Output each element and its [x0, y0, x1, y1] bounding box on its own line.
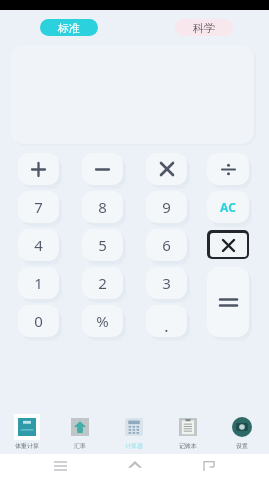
- staticText: 2: [98, 273, 107, 293]
- button[interactable]: 7: [18, 191, 59, 223]
- button[interactable]: All clear: [207, 191, 249, 223]
- button[interactable]: 1: [18, 267, 59, 299]
- staticText: 1: [34, 273, 43, 293]
- button[interactable]: .: [146, 305, 187, 337]
- staticText: .: [164, 315, 169, 337]
- button[interactable]: Divide: [207, 153, 249, 185]
- button[interactable]: 记账本: [161, 410, 215, 454]
- button[interactable]: 2: [82, 267, 123, 299]
- staticText: 5: [98, 235, 107, 255]
- staticText: 体重计算: [15, 442, 39, 450]
- staticText: 6: [162, 235, 171, 255]
- button[interactable]: Back: [194, 454, 224, 478]
- button[interactable]: 设置: [215, 410, 269, 454]
- staticText: 记账本: [179, 442, 197, 450]
- staticText: 3: [162, 273, 171, 293]
- button[interactable]: Equals: [207, 267, 249, 337]
- staticText: 4: [34, 235, 43, 255]
- button[interactable]: 汇率: [53, 410, 107, 454]
- button[interactable]: 0: [18, 305, 59, 337]
- button[interactable]: 体重计算: [0, 410, 53, 454]
- staticText: 汇率: [74, 442, 86, 450]
- button[interactable]: %: [82, 305, 123, 337]
- button[interactable]: 3: [146, 267, 187, 299]
- staticText: 计算器: [125, 442, 143, 450]
- button[interactable]: Delete: [207, 230, 249, 259]
- button[interactable]: 8: [82, 191, 123, 223]
- staticText: 7: [34, 197, 43, 217]
- button[interactable]: 标准: [40, 19, 98, 36]
- staticText: 标准: [58, 21, 80, 35]
- button[interactable]: 科学: [175, 19, 233, 36]
- staticText: 0: [34, 311, 43, 331]
- button[interactable]: 4: [18, 229, 59, 261]
- button[interactable]: Multiply: [146, 153, 187, 185]
- staticText: 9: [162, 197, 171, 217]
- button[interactable]: 计算器: [107, 410, 161, 454]
- button[interactable]: 6: [146, 229, 187, 261]
- button[interactable]: Plus: [18, 153, 59, 185]
- button[interactable]: Minus: [82, 153, 123, 185]
- button[interactable]: 9: [146, 191, 187, 223]
- staticText: 8: [98, 197, 107, 217]
- button[interactable]: 5: [82, 229, 123, 261]
- staticText: AC: [220, 199, 236, 215]
- button[interactable]: Recent apps: [45, 454, 75, 478]
- staticText: 科学: [193, 21, 215, 35]
- staticText: %: [96, 311, 109, 331]
- staticText: 设置: [236, 442, 248, 450]
- button[interactable]: Home: [120, 454, 150, 478]
